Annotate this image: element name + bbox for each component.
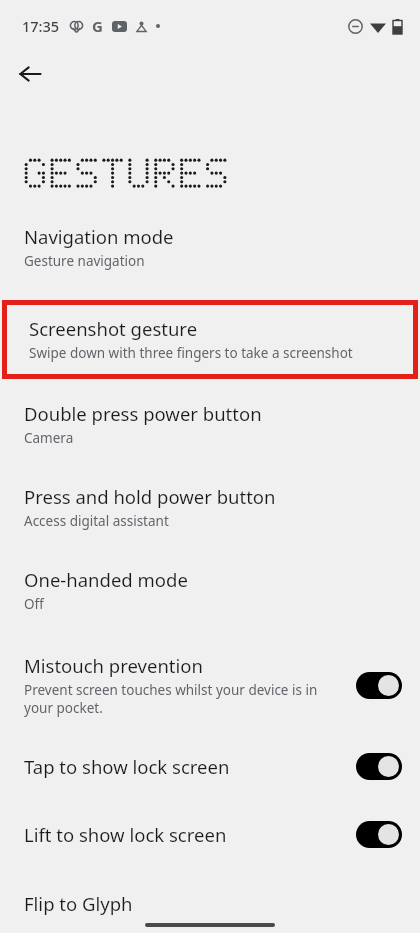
staticText: 17:35 — [22, 16, 60, 36]
button[interactable]: Toggle — [356, 672, 402, 699]
staticText: Tap to show lock screen — [24, 754, 230, 779]
button[interactable]: Toggle — [356, 821, 402, 848]
staticText: G — [92, 16, 103, 36]
staticText: Lift to show lock screen — [24, 822, 227, 847]
staticText: Double press power button — [24, 401, 262, 426]
staticText: One-handed mode — [24, 567, 188, 592]
button[interactable]: Mistouch prevention — [0, 653, 420, 717]
button[interactable]: Press and hold power button — [0, 484, 420, 530]
staticText: Off — [24, 595, 44, 613]
staticText: Flip to Glyph — [24, 891, 133, 916]
staticText: Press and hold power button — [24, 484, 276, 509]
button[interactable]: Double press power button — [0, 401, 420, 447]
button[interactable]: Navigation mode — [0, 224, 420, 270]
button[interactable]: Lift to show lock screen — [0, 821, 420, 848]
button[interactable]: One-handed mode — [0, 567, 420, 613]
staticText: Gesture navigation — [24, 252, 145, 270]
staticText: Camera — [24, 429, 74, 447]
staticText: Screenshot gesture — [29, 316, 198, 341]
button[interactable]: Toggle — [356, 753, 402, 780]
staticText: Swipe down with three fingers to take a … — [29, 344, 353, 362]
staticText: Navigation mode — [24, 224, 174, 249]
staticText: Prevent screen touches whilst your devic… — [24, 681, 318, 717]
staticText: Mistouch prevention — [24, 653, 203, 678]
button[interactable]: Flip to Glyph — [0, 891, 420, 916]
button[interactable]: Back — [8, 52, 52, 96]
staticText: Access digital assistant — [24, 512, 169, 530]
button[interactable]: Tap to show lock screen — [0, 753, 420, 780]
button[interactable]: Screenshot gesture — [7, 305, 413, 374]
